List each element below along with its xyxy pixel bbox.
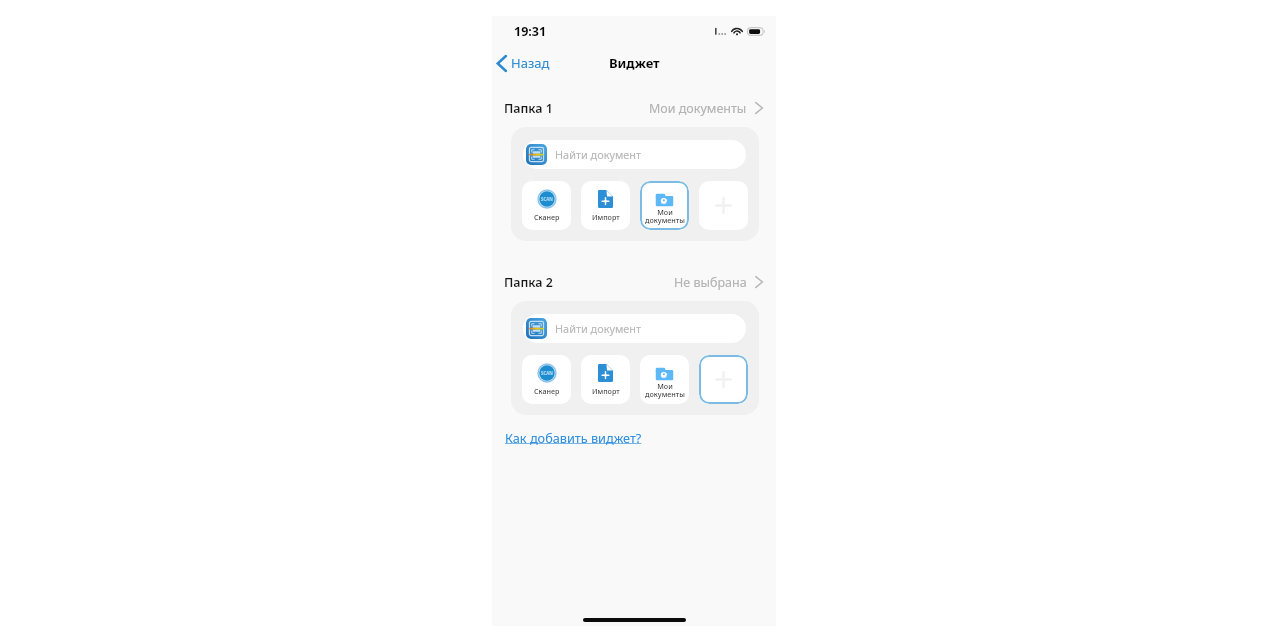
button[interactable]: Найти документ [523,314,746,343]
staticText: Сканер [534,386,560,396]
button[interactable]: Импорт [581,181,630,230]
staticText: SCAN [541,196,553,202]
other: Add widget [699,355,748,404]
staticText: Папка 1 [504,100,553,117]
staticText: Назад [511,54,550,72]
staticText: 19:31 [514,23,547,40]
button[interactable]: Папка 1 [492,97,776,119]
staticText: Мои документы [649,100,747,117]
button[interactable]: Импорт [581,355,630,404]
staticText: Мои документы [645,207,685,225]
button[interactable]: Мои документы [640,355,689,404]
staticText: Сканер [534,212,560,222]
staticText: Найти документ [555,147,642,162]
button[interactable]: SCAN [522,181,571,230]
staticText: Импорт [592,212,620,222]
staticText: Мои документы [645,381,685,399]
other: Add widget [699,181,748,230]
button[interactable]: Как добавить виджет? [505,429,642,446]
staticText: Импорт [592,386,620,396]
button[interactable]: Найти документ [523,140,746,169]
button[interactable]: SCAN [522,355,571,404]
button[interactable]: Add widget [699,181,748,230]
staticText: Виджет [609,54,660,72]
other: Open [755,276,763,288]
button[interactable]: Папка 2 [492,271,776,293]
other: Open [755,102,763,114]
button[interactable]: Мои документы [640,181,689,230]
staticText: Найти документ [555,321,642,336]
staticText: Папка 2 [504,274,553,291]
button[interactable]: Назад [494,51,552,75]
button[interactable]: Add widget [699,355,748,404]
staticText: Не выбрана [674,274,747,291]
staticText: SCAN [541,370,553,376]
